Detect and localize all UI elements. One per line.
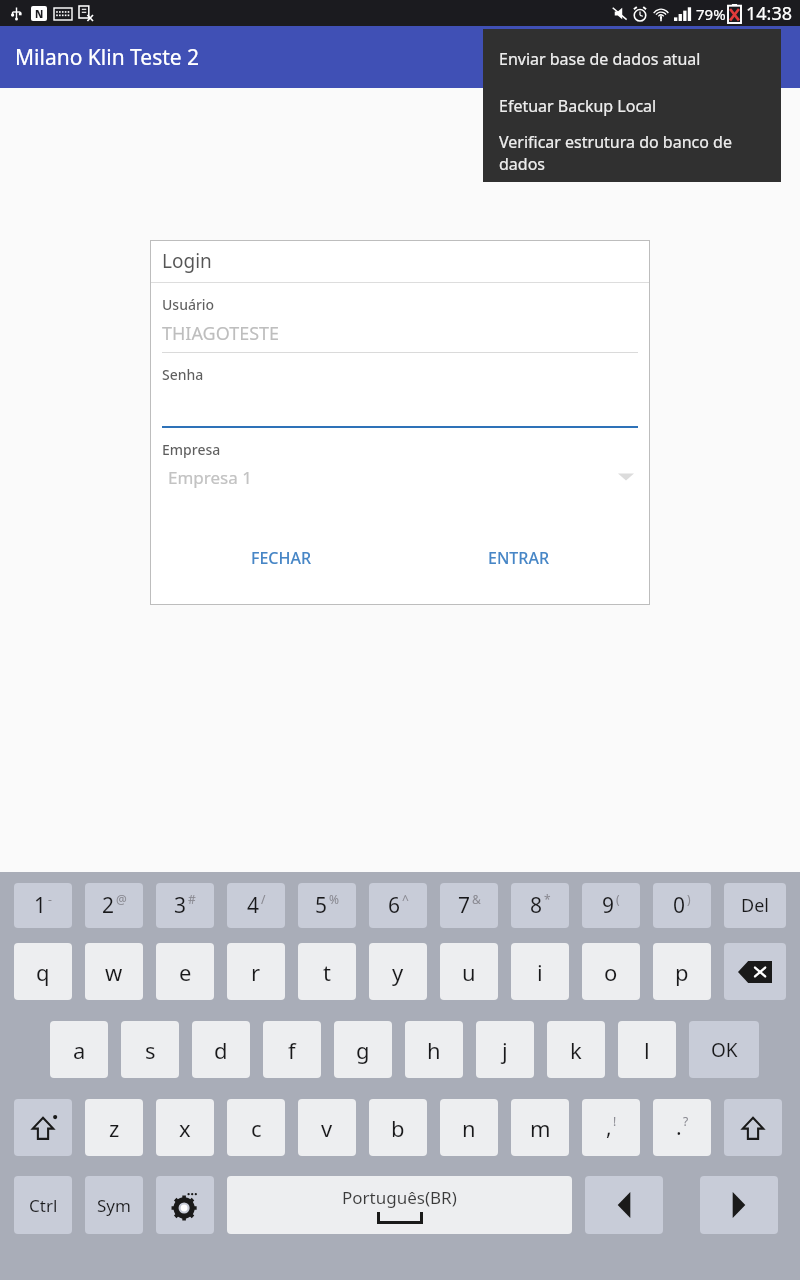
staticText: THIAGOTESTE: [162, 321, 280, 346]
button[interactable]: d: [192, 1021, 250, 1078]
button[interactable]: m: [511, 1099, 569, 1156]
button[interactable]: Ctrl: [14, 1176, 72, 1234]
staticText: 79%: [696, 4, 726, 24]
button[interactable]: e: [156, 943, 214, 1000]
staticText: i: [537, 957, 543, 987]
staticText: OK: [711, 1037, 738, 1063]
staticText: Milano Klin Teste 2: [15, 43, 200, 72]
button[interactable]: o: [582, 943, 640, 1000]
staticText: ): [687, 891, 691, 907]
staticText: Empresa 1: [168, 466, 618, 489]
staticText: FECHAR: [251, 547, 312, 569]
staticText: 6: [388, 891, 401, 920]
button[interactable]: .: [653, 1099, 711, 1156]
staticText: n: [462, 1113, 476, 1143]
button[interactable]: ,: [582, 1099, 640, 1156]
button[interactable]: 5: [298, 883, 356, 928]
button[interactable]: 1: [14, 883, 72, 928]
staticText: ^: [402, 891, 409, 907]
button[interactable]: i: [511, 943, 569, 1000]
staticText: 4: [247, 891, 260, 920]
button[interactable]: Enviar base de dados atual: [483, 35, 781, 82]
button[interactable]: k: [547, 1021, 605, 1078]
staticText: y: [392, 957, 404, 987]
button[interactable]: Verificar estrutura do banco de dados: [483, 129, 781, 176]
button[interactable]: Right: [700, 1176, 778, 1234]
button[interactable]: c: [227, 1099, 285, 1156]
button[interactable]: p: [653, 943, 711, 1000]
staticText: #: [188, 891, 196, 907]
staticText: c: [251, 1113, 262, 1143]
staticText: 1: [34, 891, 47, 920]
staticText: u: [462, 957, 476, 987]
button[interactable]: 3: [156, 883, 214, 928]
button[interactable]: THIAGOTESTE: [162, 314, 638, 352]
button[interactable]: q: [14, 943, 72, 1000]
staticText: Login: [162, 248, 212, 274]
staticText: Usuário: [162, 295, 215, 314]
staticText: Verificar estrutura do banco de dados: [499, 131, 765, 175]
button[interactable]: a: [50, 1021, 108, 1078]
button[interactable]: Space: [227, 1176, 572, 1234]
button[interactable]: y: [369, 943, 427, 1000]
staticText: &: [472, 891, 481, 907]
staticText: g: [356, 1035, 370, 1065]
button[interactable]: j: [476, 1021, 534, 1078]
button[interactable]: u: [440, 943, 498, 1000]
button[interactable]: Shift: [724, 1099, 782, 1156]
button[interactable]: 4: [227, 883, 285, 928]
button[interactable]: n: [440, 1099, 498, 1156]
staticText: k: [570, 1035, 582, 1065]
button[interactable]: w: [85, 943, 143, 1000]
staticText: -: [48, 891, 52, 907]
button[interactable]: 0: [653, 883, 711, 928]
staticText: (: [616, 891, 620, 907]
button[interactable]: Left: [585, 1176, 663, 1234]
button[interactable]: b: [369, 1099, 427, 1156]
button[interactable]: h: [405, 1021, 463, 1078]
button[interactable]: f: [263, 1021, 321, 1078]
button[interactable]: OK: [689, 1021, 759, 1078]
staticText: Sym: [97, 1194, 131, 1217]
button[interactable]: Empresa 1: [162, 459, 638, 495]
staticText: z: [109, 1113, 120, 1143]
button[interactable]: Efetuar Backup Local: [483, 82, 781, 129]
button[interactable]: s: [121, 1021, 179, 1078]
button[interactable]: Settings: [156, 1176, 214, 1234]
staticText: r: [251, 957, 261, 987]
staticText: 7: [458, 891, 471, 920]
button[interactable]: Shift: [14, 1099, 72, 1156]
button[interactable]: t: [298, 943, 356, 1000]
button[interactable]: r: [227, 943, 285, 1000]
button[interactable]: 6: [369, 883, 427, 928]
staticText: ,: [606, 1113, 612, 1142]
button[interactable]: Del: [724, 883, 786, 928]
staticText: %: [329, 891, 339, 907]
staticText: v: [321, 1113, 333, 1143]
button[interactable]: Backspace: [724, 943, 786, 1000]
button[interactable]: l: [618, 1021, 676, 1078]
staticText: f: [288, 1035, 296, 1065]
button[interactable]: x: [156, 1099, 214, 1156]
button[interactable]: z: [85, 1099, 143, 1156]
staticText: l: [644, 1035, 650, 1065]
staticText: 0: [673, 891, 686, 920]
staticText: t: [323, 957, 331, 987]
button[interactable]: 8: [511, 883, 569, 928]
button[interactable]: v: [298, 1099, 356, 1156]
staticText: .: [676, 1113, 682, 1142]
button[interactable]: Sym: [85, 1176, 143, 1234]
button[interactable]: 7: [440, 883, 498, 928]
staticText: N: [35, 7, 44, 21]
button[interactable]: g: [334, 1021, 392, 1078]
staticText: j: [502, 1035, 508, 1065]
staticText: Empresa: [162, 440, 221, 459]
staticText: m: [530, 1113, 551, 1143]
button[interactable]: 2: [85, 883, 143, 928]
staticText: a: [73, 1035, 86, 1065]
staticText: p: [675, 957, 689, 987]
button[interactable]: ENTRAR: [400, 541, 638, 575]
button[interactable]: 9: [582, 883, 640, 928]
button[interactable]: FECHAR: [162, 541, 400, 575]
